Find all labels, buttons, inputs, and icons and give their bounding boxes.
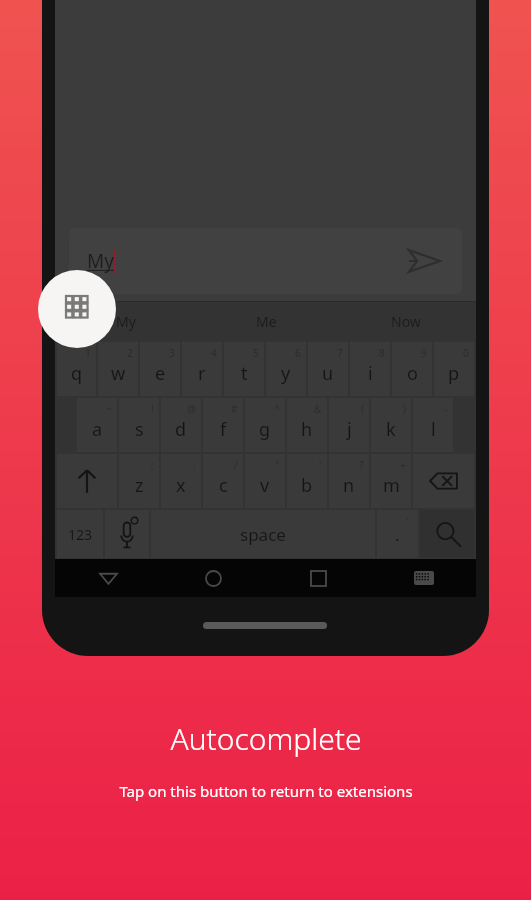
staticText: Now — [391, 312, 421, 331]
button[interactable]: 123 — [57, 510, 103, 558]
staticText: ! — [151, 402, 154, 416]
button[interactable]: 8 — [350, 342, 390, 396]
button[interactable]: ( — [329, 398, 369, 452]
button[interactable]: My — [55, 301, 196, 341]
staticText: a — [92, 417, 103, 442]
button[interactable]: 3 — [140, 342, 180, 396]
staticText: v — [260, 473, 270, 498]
staticText: ? — [359, 458, 364, 472]
staticText: b — [301, 473, 313, 498]
button[interactable]: 6 — [266, 342, 306, 396]
staticText: n — [343, 473, 355, 498]
button[interactable]: 1 — [57, 342, 96, 396]
staticText: 3 — [169, 346, 175, 360]
button[interactable]: : — [161, 454, 201, 508]
staticText: ) — [403, 402, 406, 416]
staticText: q — [71, 361, 83, 386]
button[interactable]: / — [203, 454, 243, 508]
staticText: 6 — [295, 346, 301, 360]
staticText: u — [322, 361, 334, 386]
button[interactable]: 7 — [308, 342, 348, 396]
button[interactable]: space — [151, 510, 375, 558]
staticText: 2 — [127, 346, 133, 360]
staticText: r — [198, 361, 206, 386]
staticText: Me — [256, 312, 277, 331]
staticText: 1 — [85, 346, 91, 360]
staticText: w — [111, 361, 126, 386]
staticText: j — [347, 417, 352, 442]
staticText: 4 — [211, 346, 217, 360]
staticText: p — [448, 361, 460, 386]
button[interactable]: ? — [329, 454, 369, 508]
button[interactable]: Recents — [266, 559, 371, 597]
button[interactable]: My — [69, 228, 462, 294]
button[interactable]: ) — [371, 398, 411, 452]
staticText: space — [240, 523, 286, 546]
staticText: k — [386, 417, 396, 442]
staticText: i — [368, 361, 373, 386]
staticText: d — [175, 417, 187, 442]
staticText: # — [231, 402, 238, 416]
staticText: / — [234, 458, 238, 472]
button[interactable]: ' — [287, 454, 327, 508]
button[interactable]: & — [287, 398, 327, 452]
staticText: f — [220, 417, 227, 442]
button[interactable]: 4 — [182, 342, 222, 396]
staticText: s — [135, 417, 144, 442]
button[interactable]: ! — [119, 398, 159, 452]
button[interactable]: 2 — [98, 342, 138, 396]
staticText: m — [383, 473, 400, 498]
staticText: l — [431, 417, 436, 442]
staticText: e — [155, 361, 166, 386]
button[interactable]: ~ — [77, 398, 117, 452]
staticText: ( — [361, 402, 364, 416]
button[interactable]: - — [413, 398, 453, 452]
button[interactable]: Voice input — [105, 510, 149, 558]
staticText: z — [135, 473, 144, 498]
staticText: h — [301, 417, 313, 442]
button[interactable]: Back — [55, 559, 161, 597]
staticText: . — [395, 523, 400, 546]
staticText: y — [281, 361, 291, 386]
button[interactable]: " — [245, 454, 285, 508]
button[interactable]: + — [371, 454, 411, 508]
button[interactable]: @ — [161, 398, 201, 452]
staticText: x — [176, 473, 186, 498]
staticText: o — [407, 361, 418, 386]
button[interactable]: Extensions — [38, 270, 116, 348]
button[interactable]: Send — [404, 241, 444, 281]
button[interactable]: 5 — [224, 342, 264, 396]
button[interactable]: Switch keyboard — [371, 559, 476, 597]
button[interactable]: # — [203, 398, 243, 452]
staticText: 5 — [253, 346, 259, 360]
staticText: & — [314, 402, 322, 416]
button[interactable]: 0 — [434, 342, 474, 396]
staticText: 7 — [337, 346, 343, 360]
staticText: g — [259, 417, 271, 442]
button[interactable]: Shift — [57, 454, 117, 508]
staticText: 0 — [463, 346, 469, 360]
button[interactable]: Search — [420, 510, 474, 558]
staticText: My — [116, 312, 136, 331]
button[interactable]: ; — [119, 454, 159, 508]
button[interactable]: ^ — [245, 398, 285, 452]
staticText: Tap on this button to return to extensio… — [119, 781, 413, 801]
button[interactable]: Home — [161, 559, 266, 597]
button[interactable]: Backspace — [413, 454, 474, 508]
staticText: c — [219, 473, 228, 498]
staticText: Autocomplete — [170, 718, 362, 759]
staticText: 9 — [421, 346, 427, 360]
button[interactable]: 9 — [392, 342, 432, 396]
